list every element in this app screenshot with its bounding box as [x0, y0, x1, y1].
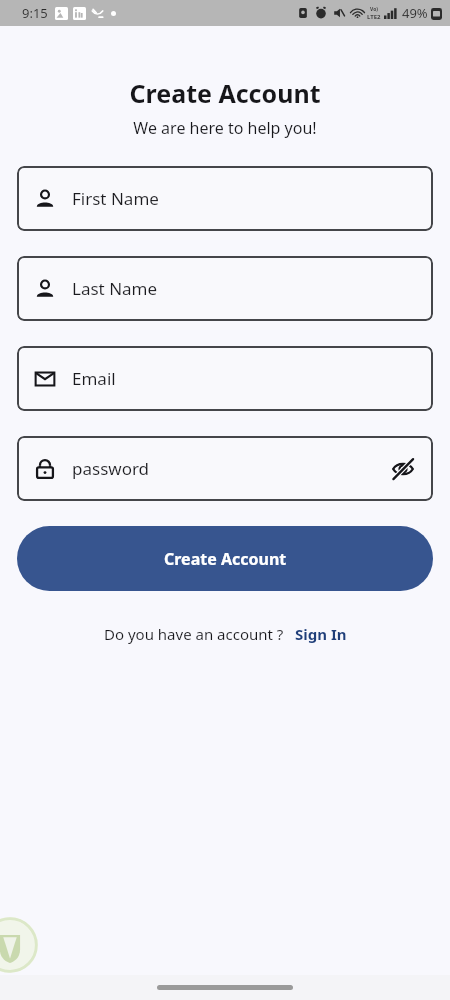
staticText: password: [72, 457, 389, 480]
button[interactable]: Email: [17, 346, 433, 411]
staticText: 9:15: [22, 4, 48, 22]
staticText: Do you have an account ?: [104, 624, 284, 644]
button[interactable]: First Name: [17, 166, 433, 231]
staticText: Vo): [370, 6, 378, 13]
staticText: LTE2: [367, 13, 381, 21]
staticText: 49%: [402, 4, 428, 22]
button[interactable]: Last Name: [17, 256, 433, 321]
staticText: Create Account: [164, 548, 287, 570]
button[interactable]: Sign In: [295, 624, 347, 644]
staticText: Last Name: [72, 277, 417, 300]
staticText: Email: [72, 367, 417, 390]
staticText: First Name: [72, 187, 417, 210]
button[interactable]: Show password: [389, 455, 417, 483]
button[interactable]: Create Account: [17, 526, 433, 591]
staticText: We are here to help you!: [0, 117, 450, 139]
button[interactable]: password: [17, 436, 433, 501]
staticText: Sign In: [295, 624, 347, 644]
staticText: Create Account: [0, 76, 450, 110]
